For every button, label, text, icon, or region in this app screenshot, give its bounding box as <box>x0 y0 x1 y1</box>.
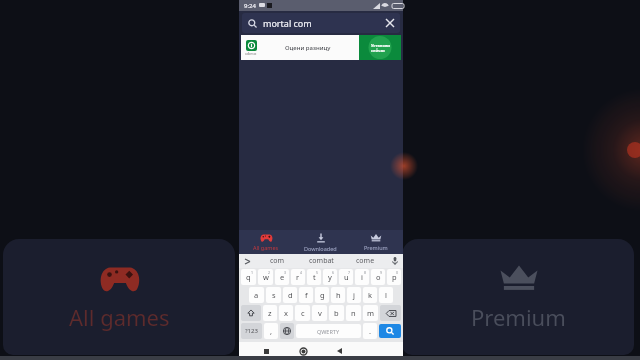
staticText: n <box>351 308 356 318</box>
staticText: 9 <box>380 270 383 275</box>
button[interactable]: 8 <box>355 269 369 285</box>
button[interactable]: All games <box>239 230 293 254</box>
other: Backspace <box>386 310 396 317</box>
button[interactable]: 5 <box>307 269 321 285</box>
staticText: u <box>344 272 349 282</box>
button[interactable]: f <box>299 287 313 303</box>
staticText: QWERTY <box>317 328 340 335</box>
button[interactable]: Premium <box>348 230 403 254</box>
button[interactable]: adbmax <box>241 35 401 60</box>
staticText: g <box>320 290 325 300</box>
button[interactable]: h <box>331 287 345 303</box>
button[interactable]: n <box>346 305 361 321</box>
button[interactable]: QWERTY <box>296 324 361 338</box>
button[interactable]: l <box>379 287 393 303</box>
staticText: b <box>334 308 339 318</box>
staticText: All games <box>69 302 170 332</box>
staticText: 7 <box>348 270 351 275</box>
staticText: Оцени разницу <box>285 44 331 52</box>
button[interactable]: combat <box>299 254 343 268</box>
button[interactable]: Backspace <box>380 305 401 321</box>
staticText: l <box>385 290 387 300</box>
button[interactable]: d <box>283 287 297 303</box>
other: Change language <box>283 327 291 335</box>
button[interactable]: ?123 <box>241 323 262 339</box>
button[interactable]: v <box>312 305 327 321</box>
staticText: w <box>263 272 269 282</box>
button[interactable]: Home <box>293 342 313 360</box>
staticText: 4 <box>300 270 303 275</box>
staticText: t <box>313 272 316 282</box>
button[interactable]: b <box>329 305 344 321</box>
staticText: 1 <box>251 270 254 275</box>
button[interactable]: Expand <box>239 254 255 268</box>
button[interactable]: 7 <box>339 269 353 285</box>
button[interactable]: . <box>363 323 377 339</box>
button[interactable]: come <box>343 254 387 268</box>
staticText: v <box>318 308 322 318</box>
button[interactable]: Premium <box>402 239 634 355</box>
button[interactable]: 2 <box>258 269 273 285</box>
staticText: a <box>254 290 259 300</box>
staticText: c <box>301 308 305 318</box>
staticText: q <box>246 272 251 282</box>
button[interactable]: 0 <box>387 269 401 285</box>
staticText: k <box>368 290 373 300</box>
button[interactable]: Search <box>242 13 400 33</box>
button[interactable]: 9 <box>371 269 385 285</box>
staticText: 2 <box>268 270 271 275</box>
staticText: All games <box>253 244 279 251</box>
button[interactable]: 3 <box>275 269 289 285</box>
staticText: mortal com <box>263 17 312 29</box>
button[interactable]: 4 <box>291 269 305 285</box>
staticText: com <box>270 256 285 266</box>
staticText: d <box>288 290 293 300</box>
staticText: i <box>361 272 363 282</box>
button[interactable]: Search <box>379 324 401 338</box>
staticText: s <box>272 290 276 300</box>
staticText: e <box>280 272 285 282</box>
button[interactable]: Back <box>329 342 349 360</box>
staticText: j <box>353 290 355 300</box>
staticText: 3 <box>284 270 287 275</box>
staticText: Downloaded <box>304 245 337 252</box>
button[interactable]: j <box>347 287 361 303</box>
staticText: come <box>356 256 375 266</box>
staticText: ?123 <box>245 327 258 335</box>
staticText: . <box>369 326 372 336</box>
button[interactable]: z <box>263 305 277 321</box>
button[interactable]: a <box>249 287 264 303</box>
button[interactable]: 6 <box>323 269 337 285</box>
staticText: o <box>376 272 381 282</box>
button[interactable]: m <box>363 305 378 321</box>
button[interactable]: Clear <box>383 16 397 30</box>
button[interactable]: x <box>279 305 293 321</box>
button[interactable]: com <box>255 254 299 268</box>
staticText: , <box>270 326 273 336</box>
button[interactable]: Recents <box>256 342 276 360</box>
button[interactable]: Voice input <box>387 254 403 268</box>
staticText: combat <box>309 256 334 266</box>
button[interactable]: k <box>363 287 377 303</box>
button[interactable]: Shift <box>241 305 261 321</box>
staticText: m <box>367 308 375 318</box>
staticText: z <box>268 308 272 318</box>
staticText: f <box>305 290 308 300</box>
button[interactable]: 1 <box>241 269 256 285</box>
staticText: 5 <box>316 270 319 275</box>
staticText: Premium <box>471 302 566 332</box>
button[interactable]: s <box>266 287 281 303</box>
button[interactable]: g <box>315 287 329 303</box>
staticText: p <box>392 272 397 282</box>
staticText: x <box>284 308 288 318</box>
staticText: 9:24 <box>244 2 256 10</box>
button[interactable]: , <box>264 323 278 339</box>
button[interactable]: Downloaded <box>293 230 348 254</box>
staticText: 0 <box>396 270 399 275</box>
staticText: r <box>296 272 300 282</box>
staticText: adbmax <box>245 52 257 56</box>
button[interactable]: c <box>295 305 310 321</box>
other: Shift <box>247 309 255 317</box>
button[interactable]: All games <box>3 239 235 355</box>
button[interactable]: Change language <box>280 323 294 339</box>
